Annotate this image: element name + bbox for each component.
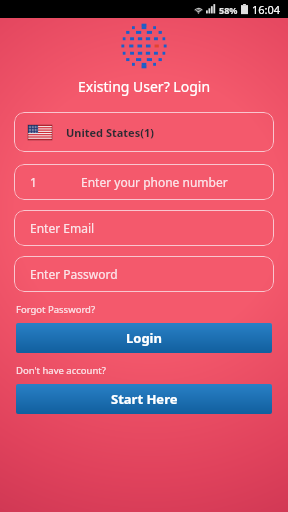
staticText: 16:04 <box>252 2 281 17</box>
button[interactable]: Start Here <box>16 384 272 414</box>
staticText: Login <box>126 329 162 347</box>
button[interactable]: Enter Email <box>14 210 274 246</box>
button[interactable]: 1 <box>14 164 274 200</box>
staticText: 58% <box>219 4 238 16</box>
staticText: Existing User? Login <box>0 77 288 96</box>
staticText: 1 <box>30 174 37 190</box>
staticText: Enter Email <box>30 220 95 236</box>
staticText: Enter Password <box>30 266 118 282</box>
button[interactable]: Enter Password <box>14 256 274 292</box>
button[interactable]: Login <box>16 323 272 353</box>
staticText: Start Here <box>111 390 178 408</box>
staticText: Don't have account? <box>16 364 106 377</box>
staticText: United States(1) <box>66 125 154 140</box>
button[interactable]: Forgot Password? <box>16 303 96 316</box>
staticText: Enter your phone number <box>81 174 228 190</box>
button[interactable]: United States(1) <box>14 112 274 152</box>
other: Globe logo <box>121 23 167 69</box>
